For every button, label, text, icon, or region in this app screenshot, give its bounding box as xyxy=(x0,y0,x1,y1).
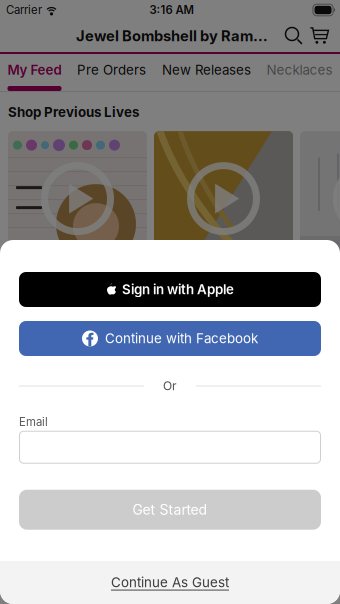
staticText: 3:16 AM xyxy=(149,3,193,17)
staticText: Email xyxy=(19,415,48,429)
staticText: Continue with Facebook xyxy=(105,330,258,346)
staticText: Jewel Bombshell by Ram… xyxy=(76,27,268,45)
staticText: Get Started xyxy=(132,501,207,518)
staticText: Pre Orders xyxy=(77,62,146,78)
button[interactable]: Pre Orders xyxy=(69,54,154,91)
button[interactable]: Continue As Guest xyxy=(0,561,340,604)
staticText: Or xyxy=(163,379,177,393)
button[interactable]: Continue with Facebook xyxy=(19,321,321,356)
button[interactable]: New Releases xyxy=(154,54,259,91)
button[interactable]: Search xyxy=(282,20,306,51)
staticText: My Feed xyxy=(7,62,61,78)
staticText: Continue As Guest xyxy=(111,574,229,590)
staticText: Carrier xyxy=(6,3,42,17)
staticText: Shop Previous Lives xyxy=(8,104,139,120)
button[interactable]: Shopping cart xyxy=(306,20,333,51)
staticText: New Releases xyxy=(162,62,251,78)
staticText: Sign in with Apple xyxy=(122,281,234,297)
button[interactable]: Get Started xyxy=(19,490,321,530)
staticText: Necklaces xyxy=(266,62,332,78)
button[interactable]: My Feed xyxy=(0,54,69,91)
button[interactable]: Sign in with Apple xyxy=(19,272,321,307)
button[interactable]: Necklaces xyxy=(259,54,340,91)
